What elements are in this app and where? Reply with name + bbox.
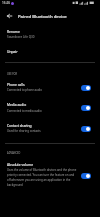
button[interactable]: Phone calls — [81, 85, 91, 91]
staticText: Rename — [7, 29, 20, 33]
button[interactable] — [0, 25, 100, 42]
staticText: Media audio — [7, 102, 27, 106]
button[interactable] — [0, 159, 100, 187]
staticText: Paired Bluetooth device — [18, 13, 67, 19]
staticText: Absolute volume — [7, 162, 34, 166]
staticText: 16:26 — [2, 1, 11, 5]
staticText: Soundcore Life Q30 — [7, 35, 35, 39]
staticText: USE FOR — [7, 72, 18, 75]
button[interactable]: Back — [3, 10, 15, 22]
button[interactable]: Contact sharing — [81, 126, 91, 132]
staticText: Unpair — [7, 49, 18, 53]
button[interactable] — [0, 79, 100, 96]
staticText: ADVANCED — [7, 151, 21, 154]
button[interactable]: Media audio — [81, 105, 91, 111]
staticText: Connected to media audio — [7, 109, 42, 113]
staticText: Uses the volume of Bluetooth devices and… — [7, 168, 78, 186]
staticText: Phone calls — [7, 82, 25, 86]
button[interactable]: Absolute volume — [81, 173, 91, 179]
staticText: Used for sharing contacts — [7, 129, 41, 133]
staticText: Connected to phone audio — [7, 88, 42, 92]
button[interactable] — [0, 100, 100, 117]
button[interactable] — [0, 44, 100, 57]
button[interactable] — [0, 120, 100, 137]
staticText: Contact sharing — [7, 123, 32, 127]
